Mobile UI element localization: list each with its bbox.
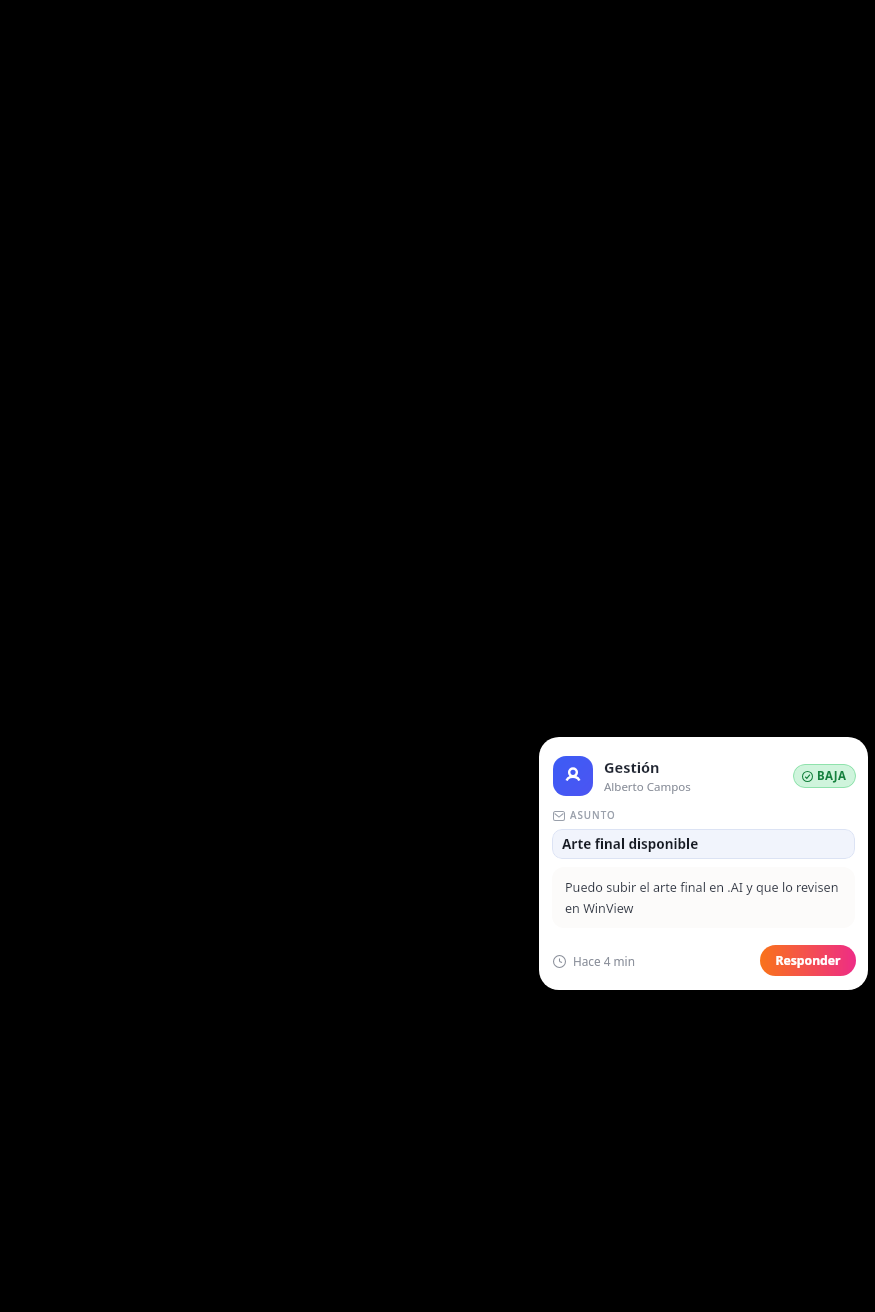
staticText: Puedo subir el arte final en .AI y que l…	[565, 879, 842, 916]
staticText: Gestión	[604, 757, 660, 777]
other: Avatar de contacto	[553, 756, 593, 796]
staticText: Hace 4 min	[573, 953, 635, 969]
staticText: Arte final disponible	[562, 835, 699, 853]
staticText: Responder	[775, 952, 841, 969]
button[interactable]: Arte final disponible	[552, 829, 855, 859]
staticText: BAJA	[817, 768, 847, 784]
button[interactable]: BAJA	[793, 764, 856, 788]
button[interactable]: Responder	[760, 945, 856, 976]
staticText: Alberto Campos	[604, 779, 691, 795]
staticText: ASUNTO	[570, 809, 616, 822]
button[interactable]: Avatar de contacto	[539, 737, 868, 990]
